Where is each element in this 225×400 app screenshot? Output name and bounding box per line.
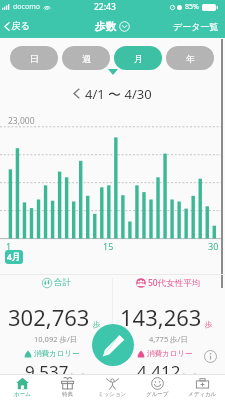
button[interactable]: 年: [166, 46, 214, 70]
staticText: データ一覧: [173, 21, 219, 32]
staticText: 4月: [7, 251, 21, 263]
button[interactable]: 戻る: [0, 17, 36, 35]
staticText: docomo: [13, 2, 40, 12]
staticText: 23,000: [8, 115, 35, 127]
staticText: 歩数: [95, 20, 116, 33]
button[interactable]: 週: [62, 46, 110, 70]
staticText: 合計: [54, 277, 71, 288]
staticText: 歩: [93, 320, 101, 329]
staticText: 9,537: [25, 360, 69, 383]
staticText: 4,775 歩/日: [149, 334, 188, 344]
button[interactable]: 歩数: [91, 18, 134, 35]
button[interactable]: ミッション: [90, 374, 135, 400]
staticText: kcal: [183, 371, 196, 381]
staticText: 週: [82, 53, 91, 64]
staticText: 日: [30, 53, 39, 64]
staticText: kcal: [71, 371, 84, 381]
staticText: ミッション: [98, 391, 127, 398]
staticText: ホーム: [14, 391, 31, 398]
button[interactable]: メディカル: [180, 374, 225, 400]
button[interactable]: 月: [114, 46, 162, 70]
button[interactable]: 特典: [45, 374, 90, 400]
staticText: 1: [6, 240, 12, 252]
staticText: 消費カロリー: [34, 349, 80, 358]
staticText: 月: [134, 53, 143, 64]
staticText: 143,263: [120, 302, 202, 332]
staticText: 年: [186, 53, 195, 64]
staticText: 30: [208, 240, 219, 252]
button[interactable]: データ一覧: [167, 17, 225, 36]
staticText: 50代女性平均: [148, 277, 201, 289]
staticText: 4/1 〜 4/30: [85, 85, 152, 101]
staticText: 4,412: [137, 360, 181, 383]
staticText: メディカル: [188, 391, 217, 398]
staticText: グループ: [146, 391, 169, 398]
staticText: 22:43: [94, 1, 116, 13]
staticText: 302,763: [8, 302, 90, 332]
staticText: 戻る: [11, 20, 31, 32]
staticText: 85%: [185, 2, 199, 12]
button[interactable]: 日: [10, 46, 58, 70]
button[interactable]: Previous period: [73, 88, 80, 99]
button[interactable]: Edit: [92, 324, 134, 366]
staticText: 消費カロリー: [147, 349, 193, 358]
staticText: 15: [103, 240, 114, 252]
button[interactable]: Information: [204, 350, 217, 363]
staticText: 特典: [62, 391, 73, 398]
staticText: 歩: [205, 320, 213, 329]
staticText: 10,092 歩/日: [34, 334, 78, 344]
button[interactable]: ホーム: [0, 374, 45, 400]
button[interactable]: グループ: [135, 374, 180, 400]
